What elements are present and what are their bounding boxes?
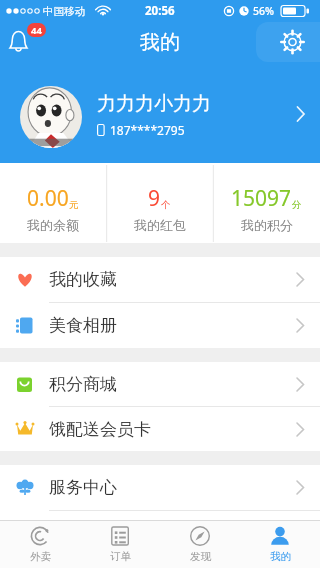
button[interactable]: 力力力小力力: [0, 62, 320, 163]
staticText: 力力力小力力: [97, 92, 211, 116]
staticText: 0.00: [27, 184, 69, 213]
staticText: 我的收藏: [49, 269, 117, 290]
staticText: 44: [31, 24, 42, 37]
staticText: 9: [148, 184, 161, 213]
button[interactable]: 积分商城: [0, 362, 320, 406]
button[interactable]: 美食相册: [0, 303, 320, 348]
staticText: 发现: [190, 550, 211, 563]
button[interactable]: 服务中心: [0, 465, 320, 510]
staticText: 56%: [253, 4, 274, 18]
button[interactable]: 0.00: [0, 163, 106, 243]
button[interactable]: 发现: [160, 521, 240, 568]
staticText: 中国移动: [43, 5, 85, 18]
staticText: 外卖: [30, 550, 51, 563]
button[interactable]: 15097: [213, 163, 320, 243]
button[interactable]: 饿配送会员卡: [0, 407, 320, 451]
staticText: 饿配送会员卡: [49, 419, 151, 440]
staticText: 我的余额: [27, 217, 79, 233]
staticText: 服务中心: [49, 477, 117, 498]
staticText: 我的: [140, 30, 180, 55]
button[interactable]: 我的: [240, 521, 320, 568]
staticText: 187****2795: [110, 122, 185, 138]
button[interactable]: 9: [106, 163, 213, 243]
staticText: 15097: [231, 184, 292, 213]
button[interactable]: Settings: [268, 22, 320, 62]
staticText: 个: [161, 199, 171, 211]
button[interactable]: 外卖: [0, 521, 80, 568]
staticText: 美食相册: [49, 315, 117, 336]
button[interactable]: Notifications: [0, 22, 52, 62]
staticText: 我的: [270, 550, 291, 563]
button[interactable]: 我的收藏: [0, 257, 320, 302]
staticText: 我的积分: [241, 217, 293, 233]
staticText: 元: [69, 199, 79, 211]
button[interactable]: 订单: [80, 521, 160, 568]
staticText: 我的红包: [134, 217, 186, 233]
staticText: 订单: [110, 550, 131, 563]
staticText: 分: [292, 199, 302, 211]
staticText: 20:56: [145, 3, 175, 19]
staticText: 积分商城: [49, 374, 117, 395]
